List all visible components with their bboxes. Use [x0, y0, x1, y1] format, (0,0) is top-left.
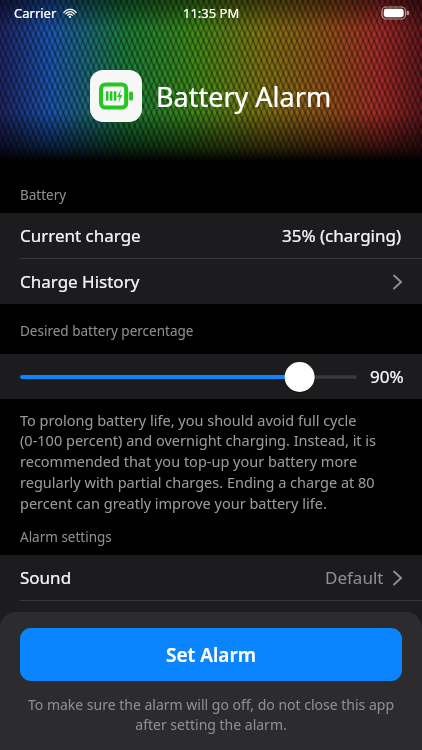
staticText: Sound: [20, 566, 72, 589]
staticText: Current charge: [20, 224, 141, 247]
staticText: Battery: [20, 186, 67, 204]
staticText: Set Alarm: [166, 642, 256, 668]
staticText: To make sure the alarm will go off, do n…: [16, 695, 406, 734]
button[interactable]: Set Alarm: [20, 628, 402, 681]
staticText: 35% (charging): [282, 224, 402, 247]
staticText: Alarm settings: [20, 528, 112, 546]
button[interactable]: Desired battery percentage: [20, 360, 357, 394]
button[interactable]: Sound: [0, 555, 422, 600]
staticText: Charge History: [20, 270, 140, 293]
staticText: To prolong battery life, you should avoi…: [20, 410, 402, 514]
button[interactable]: Charge History: [0, 259, 422, 304]
staticText: Current alarm volume: [20, 612, 196, 635]
staticText: Default: [325, 566, 384, 589]
staticText: Carrier: [14, 4, 57, 22]
staticText: Battery Alarm: [156, 78, 332, 115]
staticText: Desired battery percentage: [20, 322, 194, 340]
staticText: 60%: [368, 612, 402, 635]
button[interactable]: Current alarm volume: [0, 601, 422, 646]
staticText: 11:35 PM: [183, 4, 240, 22]
button[interactable]: Current charge: [0, 213, 422, 258]
staticText: 90%: [370, 365, 404, 388]
